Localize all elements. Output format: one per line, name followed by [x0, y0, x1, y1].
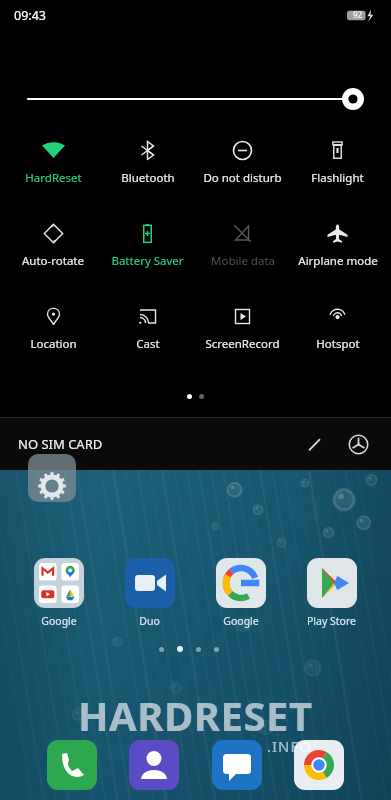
button[interactable]: Battery Saver: [100, 217, 195, 273]
staticText: Duo: [139, 614, 160, 628]
button[interactable]: Google: [216, 558, 266, 608]
button[interactable]: Mobile data: [195, 217, 290, 273]
button[interactable]: Do not disturb: [195, 134, 290, 190]
button[interactable]: Duo: [125, 558, 175, 608]
button[interactable]: Hotspot: [290, 300, 385, 356]
staticText: Auto-rotate: [22, 253, 84, 269]
staticText: Flashlight: [311, 170, 364, 186]
button[interactable]: Flashlight: [290, 134, 385, 190]
button[interactable]: Location: [6, 300, 100, 356]
staticText: Do not disturb: [203, 170, 282, 186]
staticText: ScreenRecord: [205, 336, 280, 352]
staticText: 92: [353, 9, 363, 20]
button[interactable]: Auto-rotate: [6, 217, 100, 273]
staticText: Location: [30, 336, 77, 352]
button[interactable]: Brightness: [28, 86, 363, 112]
button[interactable]: Airplane mode: [290, 217, 385, 273]
button[interactable]: HardReset: [6, 134, 100, 190]
button[interactable]: [34, 558, 84, 608]
staticText: NO SIM CARD: [18, 435, 103, 453]
staticText: Google: [223, 614, 259, 628]
button[interactable]: Settings: [339, 425, 377, 463]
button[interactable]: Contacts: [129, 740, 179, 790]
button[interactable]: Play Store: [307, 558, 357, 608]
button[interactable]: Cast: [100, 300, 195, 356]
button[interactable]: Chrome: [294, 740, 344, 790]
button[interactable]: Edit: [295, 425, 333, 463]
staticText: Bluetooth: [121, 170, 175, 186]
button[interactable]: Messages: [212, 740, 262, 790]
button[interactable]: Phone: [47, 740, 97, 790]
staticText: HardReset: [25, 170, 82, 186]
staticText: HARDRESET: [78, 688, 313, 742]
staticText: Cast: [136, 336, 160, 352]
button[interactable]: Settings: [28, 470, 76, 522]
staticText: .INFO: [267, 736, 313, 756]
button[interactable]: Bluetooth: [100, 134, 195, 190]
staticText: Play Store: [307, 614, 356, 628]
staticText: Google: [41, 614, 77, 628]
staticText: Airplane mode: [298, 253, 378, 269]
staticText: 09:43: [14, 7, 46, 24]
button[interactable]: ScreenRecord: [195, 300, 290, 356]
staticText: Battery Saver: [111, 253, 184, 269]
staticText: Mobile data: [211, 253, 275, 269]
staticText: Hotspot: [316, 336, 360, 352]
